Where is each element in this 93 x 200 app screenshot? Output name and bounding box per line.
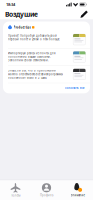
- staticText: Импортируй рейсы из почты для пополнения…: [8, 51, 56, 62]
- staticText: Показать все: [65, 86, 85, 90]
- button[interactable]: Привет! Попробуй добавить свой первый по…: [3, 31, 90, 48]
- button[interactable]: Показать все: [65, 86, 85, 90]
- staticText: Полёты: [10, 194, 20, 197]
- staticText: Внимание: [70, 194, 84, 197]
- staticText: Привет! Попробуй добавить свой первый по…: [8, 34, 60, 41]
- button[interactable]: Написать: [80, 11, 88, 18]
- button[interactable]: Импортируй рейсы из почты для пополнения…: [3, 48, 90, 65]
- staticText: 18:34: [6, 2, 15, 7]
- staticText: Профиль: [40, 194, 53, 197]
- button[interactable]: Знаете ли вы, что в приложении можно отс…: [3, 66, 90, 83]
- staticText: Знаете ли вы, что в приложении можно отс…: [8, 69, 63, 79]
- staticText: Product tips: [13, 26, 30, 29]
- staticText: Воздушие: [5, 10, 38, 19]
- button[interactable]: Профиль: [31, 180, 62, 200]
- button[interactable]: Полёты: [0, 180, 31, 200]
- button[interactable]: Внимание: [62, 180, 93, 200]
